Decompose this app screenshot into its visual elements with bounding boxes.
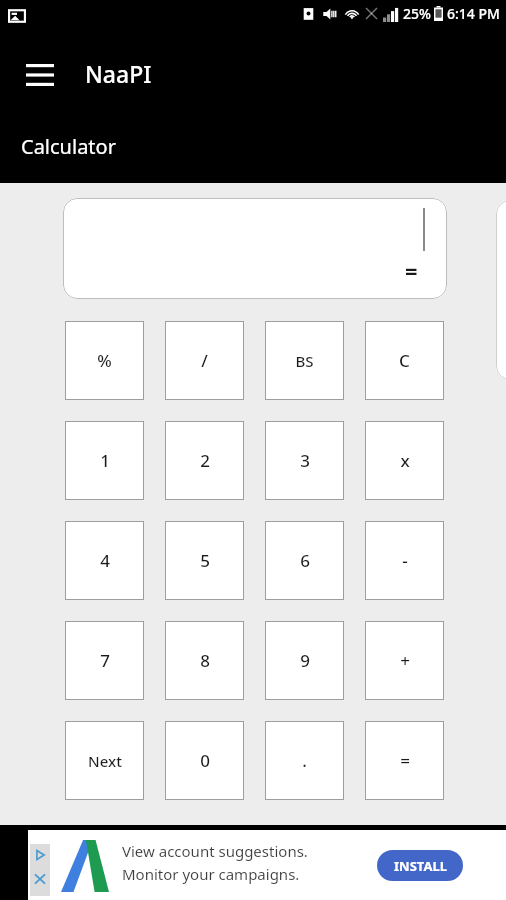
staticText: 3: [300, 449, 310, 472]
button[interactable]: Open navigation drawer: [20, 55, 60, 95]
staticText: .: [302, 749, 307, 772]
staticText: BS: [295, 351, 314, 371]
button[interactable]: 6: [265, 521, 344, 600]
button[interactable]: =: [365, 721, 444, 800]
staticText: =: [400, 749, 410, 772]
button[interactable]: %: [65, 321, 144, 400]
button[interactable]: 3: [265, 421, 344, 500]
staticText: 5: [200, 549, 210, 572]
button[interactable]: C: [365, 321, 444, 400]
staticText: View account suggestions.: [122, 841, 308, 861]
staticText: 6:14 PM: [447, 4, 500, 23]
staticText: NaaPI: [85, 58, 152, 89]
staticText: 6: [300, 549, 310, 572]
button[interactable]: 8: [165, 621, 244, 700]
button[interactable]: -: [365, 521, 444, 600]
button[interactable]: =: [63, 198, 447, 299]
staticText: 7: [100, 649, 110, 672]
button[interactable]: +: [365, 621, 444, 700]
staticText: /: [201, 349, 208, 372]
staticText: Monitor your campaigns.: [122, 864, 300, 884]
staticText: Calculator: [21, 133, 116, 160]
button[interactable]: Next: [65, 721, 144, 800]
staticText: 1: [100, 449, 110, 472]
button[interactable]: 2: [165, 421, 244, 500]
staticText: Next: [88, 751, 122, 771]
button[interactable]: 5: [165, 521, 244, 600]
button[interactable]: BS: [265, 321, 344, 400]
staticText: 25%: [403, 4, 431, 23]
button[interactable]: .: [265, 721, 344, 800]
button[interactable]: 1: [65, 421, 144, 500]
staticText: -: [402, 549, 408, 572]
button[interactable]: Ad choices: [30, 844, 50, 896]
button[interactable]: /: [165, 321, 244, 400]
button[interactable]: 7: [65, 621, 144, 700]
staticText: +: [400, 649, 410, 672]
button[interactable]: 9: [265, 621, 344, 700]
staticText: 0: [200, 749, 210, 772]
button[interactable]: x: [365, 421, 444, 500]
button[interactable]: 4: [65, 521, 144, 600]
staticText: %: [97, 349, 112, 372]
staticText: INSTALL: [394, 857, 447, 875]
staticText: x: [400, 449, 410, 472]
staticText: 4: [100, 549, 110, 572]
staticText: 8: [200, 649, 210, 672]
button[interactable]: Ad choices: [28, 830, 506, 900]
staticText: =: [405, 255, 418, 285]
staticText: 9: [300, 649, 310, 672]
staticText: C: [399, 349, 410, 372]
staticText: 2: [200, 449, 210, 472]
button[interactable]: INSTALL: [377, 850, 463, 881]
button[interactable]: 0: [165, 721, 244, 800]
